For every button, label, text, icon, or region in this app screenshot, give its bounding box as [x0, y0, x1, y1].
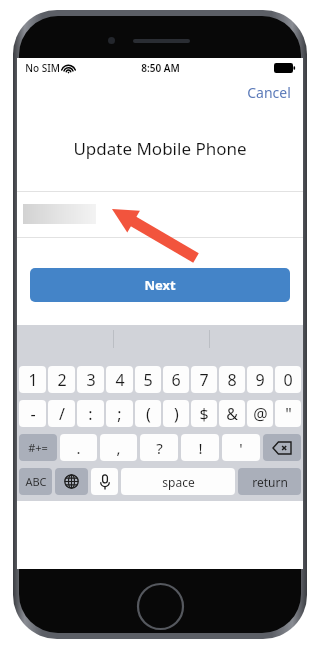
button[interactable]: @: [247, 400, 273, 427]
button[interactable]: -: [19, 400, 46, 427]
button[interactable]: 4: [106, 366, 133, 393]
staticText: :: [88, 403, 93, 425]
staticText: /: [59, 403, 65, 425]
button[interactable]: /: [48, 400, 75, 427]
button[interactable]: 2: [48, 366, 75, 393]
button[interactable]: ABC: [19, 468, 52, 495]
button[interactable]: ?: [140, 434, 178, 461]
staticText: No SIM: [25, 61, 60, 75]
staticText: ABC: [25, 474, 47, 489]
staticText: (: [146, 403, 151, 425]
staticText: 6: [171, 369, 181, 391]
button[interactable]: .: [60, 434, 97, 461]
button[interactable]: ): [163, 400, 189, 427]
staticText: .: [76, 438, 81, 458]
staticText: 1: [28, 369, 38, 391]
staticText: #+=: [28, 440, 48, 455]
button[interactable]: Next: [30, 268, 290, 302]
button[interactable]: Dictation: [91, 468, 118, 495]
button[interactable]: (: [135, 400, 161, 427]
staticText: return: [252, 474, 288, 490]
button[interactable]: Change keyboard language: [55, 468, 88, 495]
button[interactable]: 6: [163, 366, 189, 393]
staticText: space: [162, 474, 195, 490]
button[interactable]: [17, 192, 303, 237]
staticText: ): [174, 403, 179, 425]
staticText: 5: [143, 369, 153, 391]
button[interactable]: 5: [135, 366, 161, 393]
staticText: 7: [199, 369, 209, 391]
staticText: ': [239, 438, 243, 458]
button[interactable]: 1: [19, 366, 46, 393]
button[interactable]: &: [219, 400, 245, 427]
button[interactable]: $: [191, 400, 217, 427]
button[interactable]: 7: [191, 366, 217, 393]
button[interactable]: return: [238, 468, 301, 495]
button[interactable]: space: [121, 468, 235, 495]
staticText: 8:50 AM: [141, 61, 180, 75]
staticText: ,: [116, 438, 121, 458]
staticText: Next: [144, 276, 176, 294]
staticText: ": [285, 403, 292, 425]
button[interactable]: 0: [275, 366, 301, 393]
staticText: 8: [227, 369, 237, 391]
button[interactable]: ;: [106, 400, 133, 427]
button[interactable]: !: [181, 434, 219, 461]
staticText: 2: [57, 369, 67, 391]
button[interactable]: 9: [247, 366, 273, 393]
button[interactable]: 3: [77, 366, 104, 393]
staticText: ?: [156, 438, 163, 458]
button[interactable]: ': [222, 434, 260, 461]
staticText: !: [198, 438, 203, 458]
button[interactable]: ": [275, 400, 301, 427]
staticText: 4: [115, 369, 125, 391]
button[interactable]: Cancel: [235, 79, 303, 106]
button[interactable]: Backspace: [263, 434, 301, 461]
staticText: Cancel: [247, 83, 291, 102]
button[interactable]: ,: [100, 434, 137, 461]
staticText: ;: [117, 403, 122, 425]
button[interactable]: :: [77, 400, 104, 427]
button[interactable]: 8: [219, 366, 245, 393]
staticText: -: [30, 403, 36, 425]
staticText: 3: [86, 369, 96, 391]
staticText: 0: [283, 369, 293, 391]
button[interactable]: #+=: [19, 434, 57, 461]
staticText: 9: [255, 369, 265, 391]
staticText: Update Mobile Phone: [73, 137, 247, 160]
staticText: $: [199, 403, 209, 425]
staticText: @: [253, 403, 268, 425]
staticText: &: [226, 403, 238, 425]
